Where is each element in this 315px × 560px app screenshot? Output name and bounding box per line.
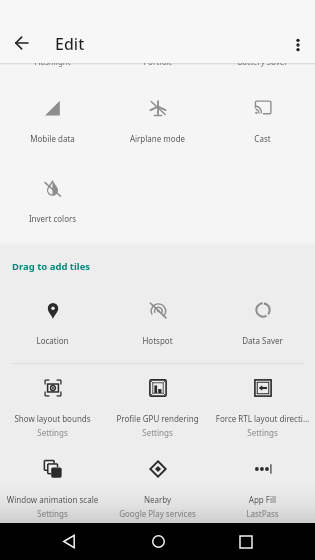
staticText: Location <box>2 335 103 346</box>
button[interactable]: Window animation scale <box>0 453 105 521</box>
staticText: Settings <box>212 427 313 438</box>
button[interactable]: Navigate up <box>4 25 40 61</box>
staticText: Flashlight <box>34 56 71 67</box>
staticText: Invert colors <box>2 213 103 224</box>
staticText: Drag to add tiles <box>12 260 91 273</box>
button[interactable]: Profile GPU rendering <box>105 372 210 440</box>
button[interactable]: Data Saver <box>210 294 315 352</box>
staticText: Google Play services <box>107 508 208 519</box>
staticText: Edit <box>55 33 85 55</box>
staticText: Settings <box>107 427 208 438</box>
staticText: Force RTL layout directi… <box>212 413 313 424</box>
button[interactable]: App Fill <box>210 453 315 521</box>
button[interactable]: Cast <box>210 92 315 150</box>
button[interactable]: Hotspot <box>105 294 210 352</box>
staticText: Portrait <box>143 56 172 67</box>
button[interactable]: More options <box>280 27 315 63</box>
staticText: Data Saver <box>212 335 313 346</box>
button[interactable]: Nearby <box>105 453 210 521</box>
staticText: Airplane mode <box>107 133 208 144</box>
button[interactable]: Invert colors <box>0 172 105 230</box>
button[interactable]: Location <box>0 294 105 352</box>
button[interactable]: Recent apps <box>226 523 266 560</box>
staticText: Mobile data <box>2 133 103 144</box>
staticText: Settings <box>2 508 103 519</box>
staticText: Cast <box>212 133 313 144</box>
button[interactable]: Back <box>49 523 89 560</box>
staticText: Hotspot <box>107 335 208 346</box>
button[interactable]: Show layout bounds <box>0 372 105 440</box>
staticText: Battery Saver <box>237 56 288 67</box>
button[interactable]: Mobile data <box>0 92 105 150</box>
staticText: Settings <box>2 427 103 438</box>
button[interactable]: Home <box>138 523 178 560</box>
staticText: App Fill <box>212 494 313 505</box>
staticText: Nearby <box>107 494 208 505</box>
staticText: Show layout bounds <box>2 413 103 424</box>
button[interactable]: Airplane mode <box>105 92 210 150</box>
staticText: Profile GPU rendering <box>107 413 208 424</box>
button[interactable]: Force RTL layout directi… <box>210 372 315 440</box>
staticText: Window animation scale <box>2 494 103 505</box>
staticText: LastPass <box>212 508 313 519</box>
